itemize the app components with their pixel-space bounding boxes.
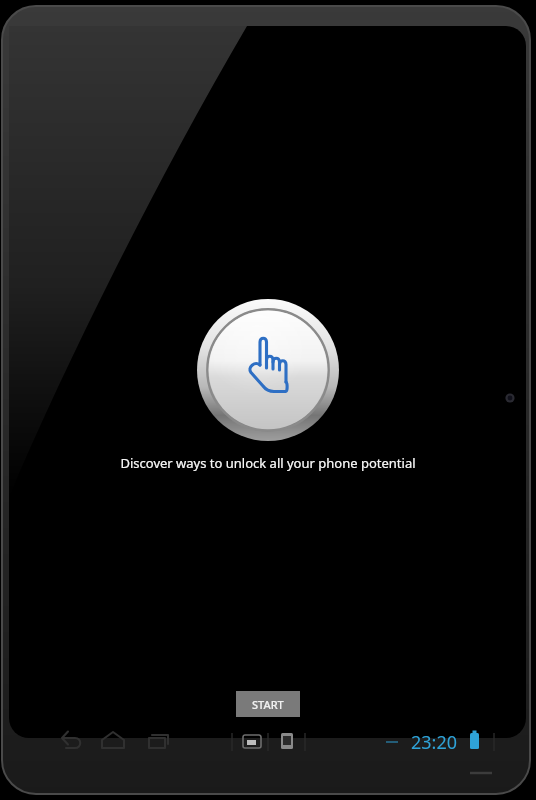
staticText: Discover ways to unlock all your phone p… [120, 454, 416, 472]
button[interactable]: Home [98, 728, 128, 758]
button[interactable]: Back [54, 728, 84, 758]
staticText: START [252, 697, 284, 712]
button[interactable]: START [236, 691, 300, 717]
staticText: 23:20 [411, 730, 458, 754]
button[interactable]: TIPS [197, 299, 339, 441]
button[interactable]: Recents [142, 728, 172, 758]
